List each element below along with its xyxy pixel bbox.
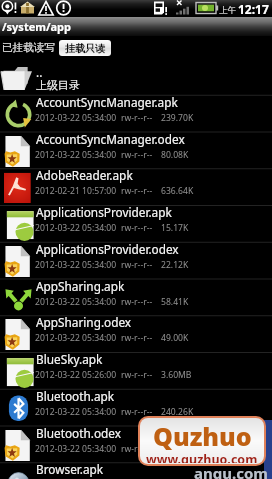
staticText: AdobeReader.apk: [36, 167, 133, 183]
button[interactable]: 挂载只读: [59, 40, 111, 56]
staticText: 49.00K: [161, 332, 189, 344]
button[interactable]: Browser.apk: [0, 463, 272, 479]
staticText: 58.41K: [161, 296, 189, 308]
staticText: 挂载只读: [65, 42, 105, 55]
staticText: 2012-03-22 05:34:00: [35, 149, 117, 161]
staticText: 2012-03-22 05:34:00: [35, 332, 117, 344]
button[interactable]: AccountSyncManager.odex: [0, 133, 272, 170]
staticText: 12:17: [238, 1, 269, 17]
staticText: 15.17K: [161, 222, 189, 234]
staticText: rw-r--r--: [121, 185, 153, 197]
staticText: 上午: [219, 5, 236, 16]
staticText: AppSharing.apk: [36, 278, 125, 294]
staticText: ..: [36, 64, 43, 80]
staticText: 80.08K: [161, 149, 189, 161]
staticText: Browser.apk: [36, 461, 104, 477]
button[interactable]: Bluetooth.odex: [0, 427, 272, 464]
staticText: AccountSyncManager.apk: [36, 94, 178, 110]
staticText: 2012-03-22 05:34:00: [35, 443, 117, 455]
staticText: 3.60MB: [161, 369, 192, 381]
button[interactable]: ApplicationsProvider.apk: [0, 206, 272, 243]
staticText: BlueSky.apk: [36, 351, 103, 367]
staticText: 2012-03-22 05:34:00: [35, 406, 117, 418]
staticText: 239.70K: [161, 112, 194, 124]
button[interactable]: AppSharing.odex: [0, 316, 272, 353]
staticText: ApplicationsProvider.apk: [36, 204, 172, 220]
staticText: rw-r--r--: [121, 406, 153, 418]
staticText: 22.12K: [161, 259, 189, 271]
button[interactable]: ..: [0, 59, 272, 96]
staticText: rw-r--r--: [121, 296, 153, 308]
staticText: rw-r--r--: [121, 443, 153, 455]
staticText: 2012-03-22 05:34:00: [35, 259, 117, 271]
staticText: AccountSyncManager.odex: [36, 131, 185, 147]
staticText: /system/app: [2, 19, 72, 34]
button[interactable]: AdobeReader.apk: [0, 169, 272, 206]
staticText: www.quzhuo.com: [146, 451, 258, 463]
button[interactable]: AppSharing.apk: [0, 280, 272, 317]
staticText: rw-r--r--: [121, 332, 153, 344]
staticText: 2012-02-21 10:57:00: [35, 185, 117, 197]
staticText: 已挂载读写: [2, 41, 55, 54]
staticText: rw-r--r--: [121, 222, 153, 234]
staticText: rw-r--r--: [121, 149, 153, 161]
staticText: Bluetooth.apk: [36, 388, 115, 404]
staticText: 上级目录: [36, 78, 80, 92]
staticText: 240.26K: [161, 406, 194, 418]
staticText: 2012-03-22 05:34:00: [35, 222, 117, 234]
staticText: Quzhuo: [153, 419, 252, 453]
staticText: 2012-03-22 05:34:00: [35, 296, 117, 308]
button[interactable]: Bluetooth.apk: [0, 390, 272, 427]
staticText: ApplicationsProvider.odex: [36, 241, 179, 257]
staticText: anqu.com: [194, 463, 268, 479]
button[interactable]: AccountSyncManager.apk: [0, 96, 272, 133]
staticText: 48.00K: [161, 443, 189, 455]
staticText: rw-r--r--: [121, 112, 153, 124]
staticText: 2012-03-22 05:34:00: [35, 112, 117, 124]
staticText: rw-r--r--: [121, 259, 153, 271]
staticText: 636.64K: [161, 185, 194, 197]
staticText: Bluetooth.odex: [36, 425, 121, 441]
button[interactable]: BlueSky.apk: [0, 353, 272, 390]
button[interactable]: ApplicationsProvider.odex: [0, 243, 272, 280]
staticText: 2012-03-22 05:26:00: [35, 369, 117, 381]
staticText: rw-r--r--: [121, 369, 153, 381]
staticText: AppSharing.odex: [36, 314, 132, 330]
